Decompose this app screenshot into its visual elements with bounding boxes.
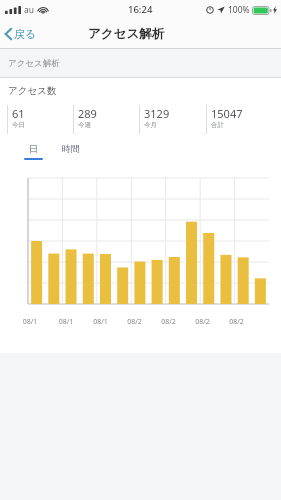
button[interactable]: Back <box>0 22 47 46</box>
staticText: 08/25 <box>194 317 211 328</box>
staticText: 289 <box>78 106 97 121</box>
staticText: 61 <box>12 106 25 121</box>
other: Back <box>4 27 13 41</box>
staticText: 今週 <box>78 121 91 129</box>
staticText: 今月 <box>144 121 157 129</box>
staticText: au <box>24 4 35 16</box>
staticText: 時間 <box>62 143 80 154</box>
staticText: 日 <box>29 143 38 154</box>
staticText: 合計 <box>211 121 224 129</box>
staticText: アクセス数 <box>8 85 57 97</box>
staticText: 08/21 <box>126 317 143 328</box>
staticText: 100% <box>228 4 250 16</box>
staticText: 3129 <box>144 106 170 121</box>
staticText: 16:24 <box>128 3 153 16</box>
staticText: 08/15 <box>21 317 39 328</box>
staticText: 15047 <box>211 106 243 121</box>
staticText: 08/23 <box>160 317 177 328</box>
staticText: アクセス解析 <box>8 58 60 69</box>
staticText: 08/27 <box>228 317 245 328</box>
staticText: 08/19 <box>92 317 109 328</box>
staticText: 今日 <box>12 121 25 129</box>
staticText: 戻る <box>14 27 37 41</box>
staticText: 08/17 <box>57 317 75 328</box>
button[interactable]: 時間 <box>59 143 83 154</box>
button[interactable]: 日 <box>21 143 46 160</box>
staticText: アクセス解析 <box>88 26 165 42</box>
